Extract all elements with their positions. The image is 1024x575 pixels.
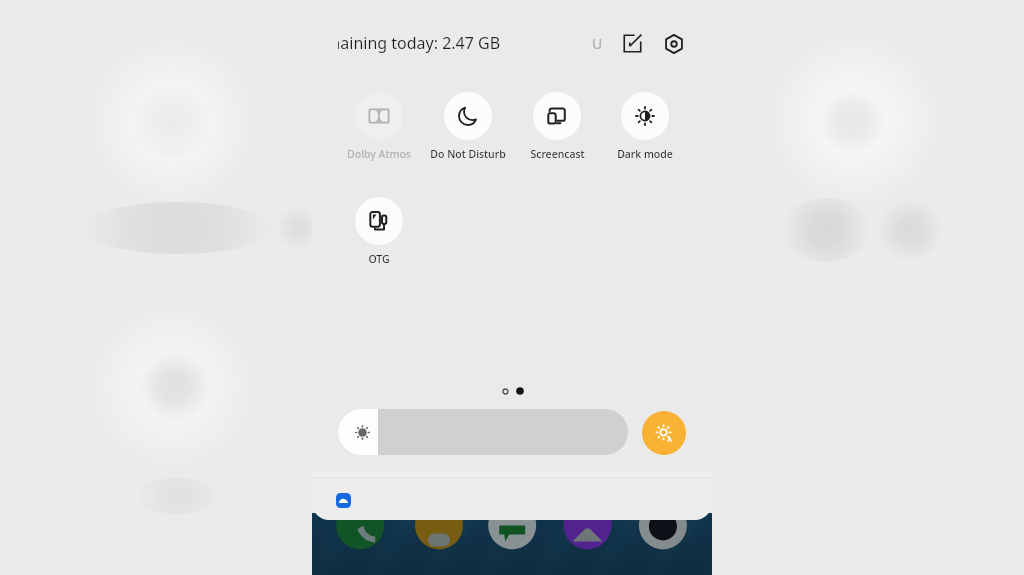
button[interactable]: OTG	[337, 197, 421, 266]
button[interactable]: Edit tiles	[622, 33, 643, 54]
staticText: Do Not Disturb	[430, 147, 506, 161]
staticText: remaining today: 2.47 GB	[338, 32, 500, 54]
staticText: U	[592, 34, 603, 53]
button[interactable]: Dolby Atmos	[337, 92, 421, 161]
button[interactable]: User	[586, 32, 608, 54]
staticText: Dark mode	[617, 147, 673, 161]
button[interactable]: Settings	[663, 33, 685, 55]
staticText: OTG	[368, 252, 390, 266]
button[interactable]: remaining today: 2.47 GB	[338, 32, 528, 54]
button[interactable]: Dark mode	[603, 92, 687, 161]
button[interactable]: Do Not Disturb	[426, 92, 510, 161]
staticText: Dolby Atmos	[347, 147, 411, 161]
button[interactable]: Screencast	[515, 92, 599, 161]
button[interactable]: Auto brightness	[642, 411, 686, 455]
button[interactable]: Brightness slider	[338, 409, 628, 455]
button[interactable]: Notification icon	[336, 493, 351, 508]
staticText: Screencast	[530, 147, 585, 161]
